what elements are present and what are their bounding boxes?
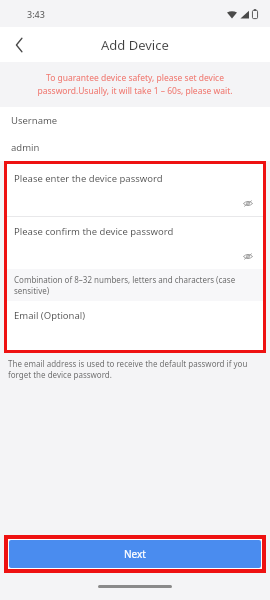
staticText: To guarantee device safety, please set d… — [37, 72, 233, 97]
staticText: Email (Optional) — [14, 309, 86, 322]
button[interactable]: Show confirm password — [239, 247, 257, 265]
staticText: admin — [11, 141, 40, 154]
staticText: Combination of 8–32 numbers, letters and… — [14, 274, 236, 296]
button[interactable]: admin — [0, 134, 270, 161]
staticText: Next — [124, 547, 146, 561]
button[interactable]: Please confirm the device password — [7, 217, 263, 269]
staticText: Please enter the device password — [14, 172, 163, 185]
staticText: Username — [11, 114, 58, 127]
button[interactable]: Next — [9, 540, 261, 568]
staticText: 3:43 — [27, 8, 45, 20]
button[interactable]: Username — [0, 107, 270, 134]
button[interactable]: Please enter the device password — [7, 164, 263, 216]
staticText: The email address is used to receive the… — [8, 358, 248, 380]
staticText: Add Device — [101, 36, 169, 54]
button[interactable]: Show password — [239, 194, 257, 212]
button[interactable]: Back — [0, 27, 38, 62]
staticText: Please confirm the device password — [14, 225, 174, 238]
button[interactable]: Email (Optional) — [7, 301, 263, 350]
